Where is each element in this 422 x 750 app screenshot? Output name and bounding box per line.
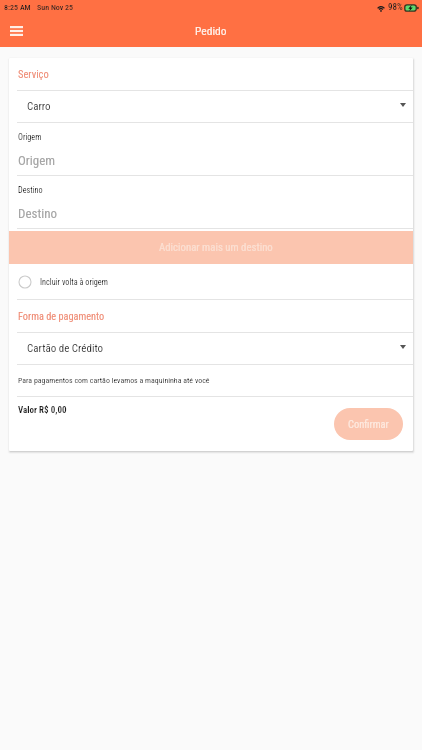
staticText: Origem	[18, 132, 42, 142]
staticText: 8:25 AM	[4, 3, 31, 12]
button[interactable]: Open navigation menu	[3, 18, 29, 44]
staticText: Confirmar	[348, 418, 389, 430]
button[interactable]: Origem	[18, 123, 413, 175]
staticText: Adicionar mais um destino	[159, 241, 273, 254]
button[interactable]: Incluir volta à origem	[9, 264, 413, 299]
staticText: Pedido	[195, 24, 227, 37]
button[interactable]: Carro	[9, 91, 413, 122]
staticText: Carro	[27, 100, 51, 113]
staticText: 98%	[388, 2, 403, 13]
staticText: Destino	[18, 185, 43, 195]
staticText: Incluir volta à origem	[40, 277, 108, 287]
button[interactable]: Confirmar	[334, 408, 403, 440]
staticText: Cartão de Crédito	[27, 342, 104, 355]
staticText: Sun Nov 25	[37, 3, 74, 12]
button[interactable]: Cartão de Crédito	[9, 333, 413, 364]
staticText: Destino	[18, 206, 58, 221]
button[interactable]: Destino	[18, 176, 413, 228]
staticText: Valor R$ 0,00	[18, 405, 67, 416]
staticText: Serviço	[18, 68, 49, 80]
staticText: Para pagamentos com cartão levamos a maq…	[18, 376, 210, 385]
button[interactable]: Adicionar mais um destino	[9, 231, 413, 264]
staticText: Origem	[18, 153, 56, 168]
staticText: Forma de pagamento	[18, 310, 105, 322]
